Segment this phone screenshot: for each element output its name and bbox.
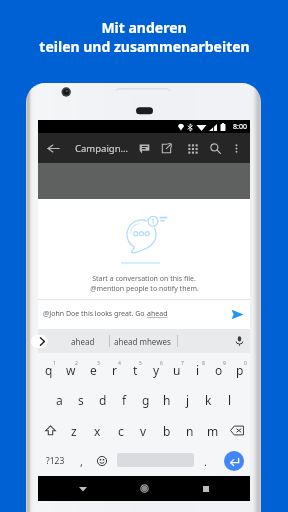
button[interactable]: , [71, 446, 91, 476]
staticText: q [45, 362, 53, 378]
button[interactable]: Emoji [92, 446, 112, 476]
staticText: teilen und zusammenarbeiten [39, 37, 250, 56]
button[interactable]: Enter [224, 451, 244, 471]
staticText: 8 [202, 360, 205, 367]
staticText: 1 [53, 360, 56, 367]
staticText: n [186, 423, 194, 439]
button[interactable]: Search [205, 138, 225, 158]
staticText: u [173, 362, 181, 378]
button[interactable]: b [155, 415, 178, 446]
button[interactable]: c [109, 415, 132, 446]
button[interactable]: Shift [38, 415, 62, 446]
staticText: c [118, 423, 124, 439]
button[interactable]: Voice input [231, 333, 247, 349]
button[interactable]: g [135, 384, 156, 415]
staticText: f [122, 392, 127, 408]
staticText: 5 [139, 360, 142, 367]
button[interactable]: ?123 [40, 446, 70, 476]
button[interactable]: ahead mhewes [110, 329, 175, 353]
staticText: ?123 [46, 455, 65, 467]
button[interactable]: k [198, 384, 219, 415]
staticText: , [80, 454, 83, 469]
staticText: m [207, 423, 219, 439]
button[interactable]: Open in new [156, 138, 176, 158]
button[interactable]: z [62, 415, 86, 446]
staticText: h [163, 392, 171, 408]
button[interactable]: 6 [145, 353, 166, 384]
button[interactable]: . [195, 446, 215, 476]
staticText: ahead mhewes [114, 336, 171, 347]
button[interactable]: l [219, 384, 240, 415]
staticText: . [204, 454, 207, 469]
staticText: 7 [181, 360, 184, 367]
staticText: @mention people to notify them. [90, 284, 199, 294]
staticText: ahead [147, 309, 168, 319]
button[interactable]: Home [114, 476, 175, 501]
button[interactable]: More options [226, 138, 246, 158]
button[interactable]: Send [228, 305, 246, 323]
staticText: v [140, 423, 147, 439]
staticText: 6 [160, 360, 163, 367]
staticText: @John Doe this looks great. Go [43, 309, 147, 319]
button[interactable]: h [156, 384, 177, 415]
button[interactable]: n [178, 415, 201, 446]
staticText: l [228, 392, 232, 408]
button[interactable]: s [70, 384, 92, 415]
button[interactable]: 5 [124, 353, 145, 384]
staticText: w [66, 362, 76, 378]
button[interactable]: 9 [208, 353, 229, 384]
staticText: r [112, 362, 117, 378]
staticText: a [56, 392, 63, 408]
staticText: g [142, 392, 150, 408]
button[interactable]: Backspace [224, 415, 250, 446]
button[interactable]: v [132, 415, 155, 446]
button[interactable]: x [86, 415, 109, 446]
staticText: 3 [97, 360, 100, 367]
button[interactable]: 3 [82, 353, 103, 384]
button[interactable]: f [114, 384, 135, 415]
button[interactable]: 7 [166, 353, 187, 384]
staticText: k [205, 392, 212, 408]
staticText: 8:00 [233, 122, 247, 132]
staticText: Campaign… [75, 142, 129, 155]
staticText: 4 [118, 360, 121, 367]
button[interactable]: 1 [38, 353, 60, 384]
staticText: t [133, 362, 138, 378]
staticText: o [215, 362, 223, 378]
staticText: ahead [71, 336, 95, 347]
button[interactable]: 4 [103, 353, 124, 384]
button[interactable]: d [92, 384, 114, 415]
staticText: y [153, 362, 160, 378]
staticText: i [196, 362, 200, 378]
staticText: 9 [223, 360, 226, 367]
button[interactable]: a [48, 384, 70, 415]
button[interactable]: Expand suggestions [31, 335, 48, 348]
staticText: e [90, 362, 97, 378]
staticText: Mit anderen [101, 18, 187, 37]
staticText: Start a conversation on this file. [92, 274, 196, 284]
button[interactable]: ahead [57, 329, 109, 353]
staticText: p [236, 362, 244, 378]
button[interactable]: Comment [134, 138, 154, 158]
button[interactable]: Back [52, 476, 114, 501]
button[interactable]: Recents [175, 476, 236, 501]
button[interactable]: m [201, 415, 224, 446]
staticText: b [163, 423, 171, 439]
staticText: d [99, 392, 107, 408]
button[interactable]: Apps [182, 138, 202, 158]
button[interactable]: 0 [229, 353, 250, 384]
staticText: j [186, 392, 190, 408]
staticText: s [78, 392, 84, 408]
staticText: x [94, 423, 101, 439]
staticText: z [71, 423, 77, 439]
staticText: 0 [244, 360, 247, 367]
button[interactable]: j [177, 384, 198, 415]
button[interactable]: Back [42, 137, 64, 159]
button[interactable]: 2 [60, 353, 82, 384]
button[interactable]: 8 [187, 353, 208, 384]
staticText: 2 [75, 360, 78, 367]
